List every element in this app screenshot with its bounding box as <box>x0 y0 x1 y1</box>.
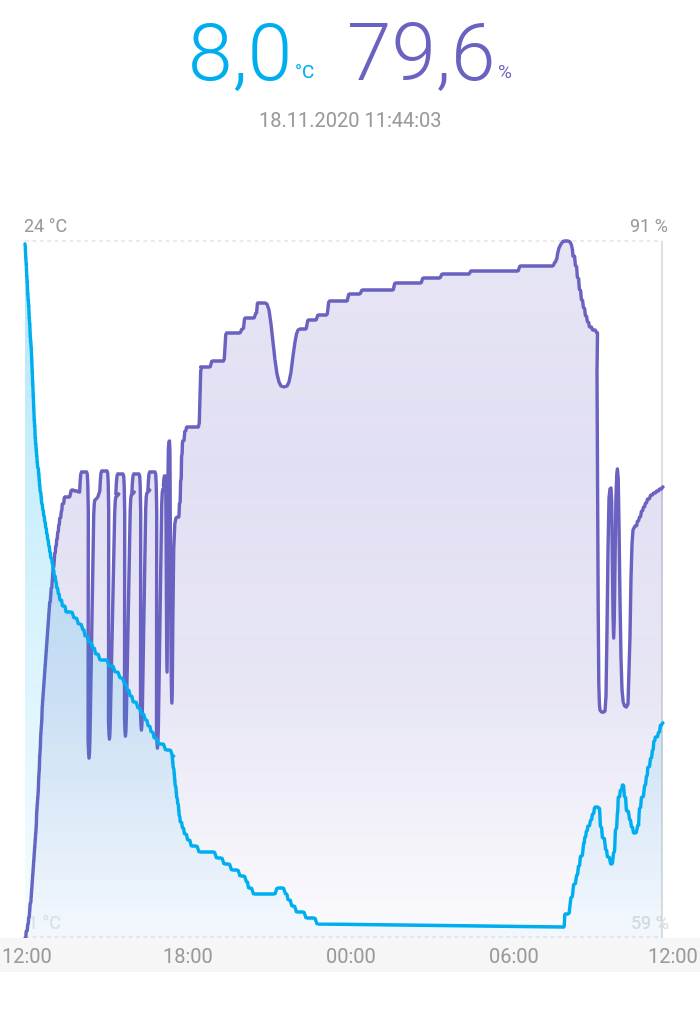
staticText: 91 % <box>630 215 668 236</box>
staticText: 59 % <box>631 912 669 933</box>
staticText: % <box>498 60 512 82</box>
staticText: 00:00 <box>326 944 376 967</box>
staticText: 18:00 <box>163 944 213 967</box>
staticText: 24 °C <box>24 215 68 236</box>
staticText: 1 °C <box>28 912 62 933</box>
staticText: 12:00 <box>2 944 52 967</box>
staticText: 8,0 <box>188 6 293 100</box>
staticText: 18.11.2020 11:44:03 <box>259 108 442 131</box>
staticText: 12:00 <box>648 944 698 967</box>
staticText: 06:00 <box>489 944 539 967</box>
staticText: 79,6 <box>347 6 496 100</box>
staticText: °C <box>295 60 315 82</box>
